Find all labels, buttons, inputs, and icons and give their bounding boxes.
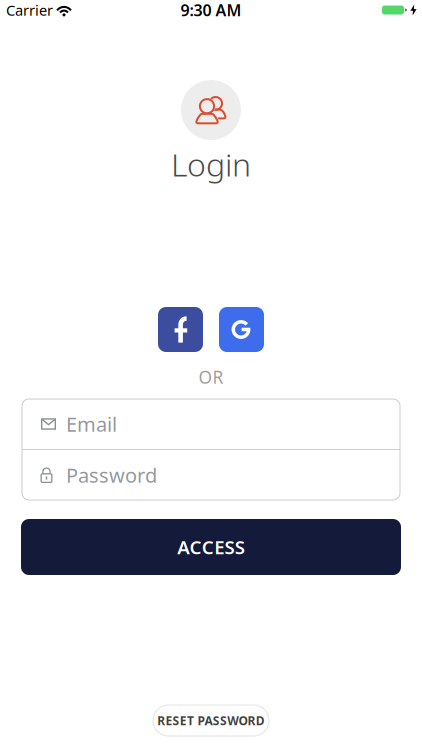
staticText: OR	[198, 365, 223, 388]
button[interactable]: RESET PASSWORD	[153, 705, 269, 736]
button[interactable]: Log in with Facebook	[158, 307, 203, 352]
button[interactable]: Email	[22, 399, 400, 449]
staticText: Carrier	[6, 0, 53, 20]
staticText: Password	[66, 462, 157, 488]
button[interactable]: Log in with Google	[219, 307, 264, 352]
staticText: RESET PASSWORD	[157, 712, 265, 728]
staticText: ACCESS	[177, 535, 245, 559]
staticText: Login	[171, 143, 251, 185]
staticText: Email	[66, 411, 117, 437]
staticText: 9:30 AM	[180, 0, 241, 21]
button[interactable]: ACCESS	[21, 519, 401, 575]
button[interactable]: Password	[22, 450, 400, 500]
